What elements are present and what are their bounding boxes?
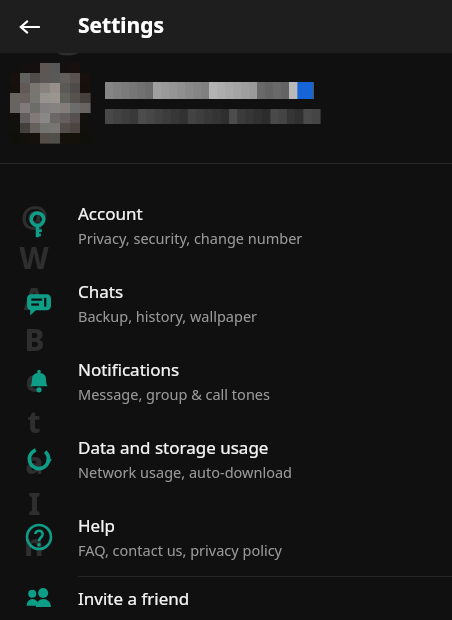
button[interactable]: Account	[0, 186, 452, 264]
button[interactable]: Back	[8, 5, 52, 49]
button[interactable]: Help	[0, 498, 452, 576]
staticText: a	[25, 442, 44, 483]
staticText: @	[21, 196, 48, 237]
staticText: Settings	[78, 11, 165, 40]
staticText: A	[23, 278, 45, 319]
staticText: Backup, history, wallpaper	[78, 306, 258, 326]
staticText: W	[19, 237, 49, 278]
staticText: Privacy, security, change number	[78, 228, 303, 248]
staticText: FAQ, contact us, privacy policy	[78, 540, 282, 560]
button[interactable]: Invite a friend	[0, 577, 452, 620]
staticText: Message, group & call tones	[78, 384, 270, 404]
staticText: Data and storage usage	[78, 436, 269, 459]
button[interactable]: Data and storage usage	[0, 420, 452, 498]
staticText: Notifications	[78, 358, 180, 381]
staticText: B	[24, 319, 45, 360]
staticText: @WABetaInfo	[48, 6, 356, 66]
staticText: I	[28, 483, 41, 524]
staticText: t	[27, 401, 41, 442]
button[interactable]	[0, 53, 452, 163]
button[interactable]: Notifications	[0, 342, 452, 420]
staticText: Invite a friend	[78, 587, 190, 610]
staticText: Help	[78, 514, 116, 537]
staticText: Network usage, auto-download	[78, 462, 292, 482]
staticText: Account	[78, 202, 143, 225]
button[interactable]: Chats	[0, 264, 452, 342]
staticText: e	[25, 360, 44, 401]
staticText: Chats	[78, 280, 124, 303]
staticText: n	[24, 524, 44, 556]
